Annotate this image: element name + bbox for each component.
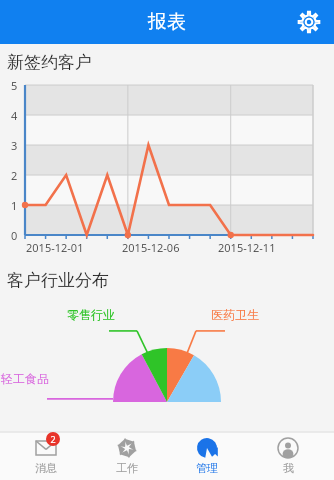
staticText: 2 <box>50 433 56 445</box>
staticText: 客户行业分布 <box>7 270 109 291</box>
staticText: 报表 <box>148 10 186 34</box>
staticText: 我 <box>283 461 294 475</box>
staticText: 1 <box>11 198 18 213</box>
staticText: 2015-12-01 <box>26 240 84 255</box>
staticText: 2015-12-11 <box>218 240 276 255</box>
button[interactable]: Settings <box>291 4 327 40</box>
staticText: 2015-12-06 <box>122 240 180 255</box>
staticText: 2 <box>11 168 18 183</box>
button[interactable]: 我 <box>253 432 323 480</box>
staticText: 管理 <box>196 461 218 475</box>
button[interactable]: 管理 <box>172 432 242 480</box>
staticText: 零售行业 <box>67 307 115 322</box>
button[interactable]: 工作 <box>92 432 162 480</box>
staticText: 0 <box>11 228 18 243</box>
staticText: 轻工食品 <box>1 371 49 386</box>
staticText: 消息 <box>35 461 57 475</box>
staticText: 5 <box>11 78 18 93</box>
staticText: 3 <box>11 138 18 153</box>
staticText: 医药卫生 <box>211 307 259 322</box>
staticText: 新签约客户 <box>7 52 92 73</box>
staticText: 工作 <box>116 461 138 475</box>
button[interactable]: 2 <box>11 432 81 480</box>
staticText: 4 <box>11 108 18 123</box>
